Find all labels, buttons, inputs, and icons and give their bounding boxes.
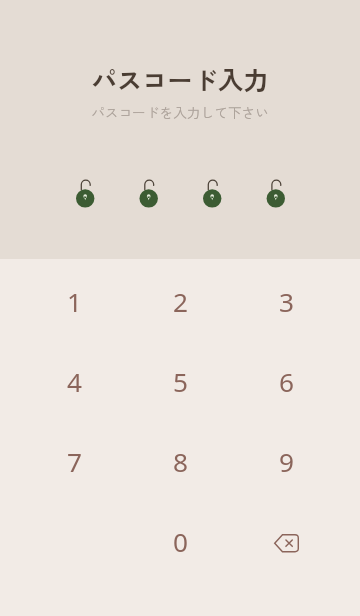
- staticText: パスコードを入力して下さい: [91, 102, 269, 122]
- button[interactable]: 4: [21, 342, 127, 422]
- button[interactable]: Delete: [233, 502, 339, 582]
- staticText: 5: [173, 364, 188, 400]
- staticText: 6: [279, 364, 294, 400]
- button[interactable]: 7: [21, 422, 127, 502]
- button[interactable]: 1: [21, 262, 127, 342]
- button[interactable]: 3: [233, 262, 339, 342]
- button[interactable]: 8: [127, 422, 233, 502]
- other: Delete: [274, 533, 299, 552]
- staticText: パスコード入力: [91, 61, 269, 98]
- button[interactable]: 5: [127, 342, 233, 422]
- staticText: 2: [173, 284, 188, 320]
- button[interactable]: 9: [233, 422, 339, 502]
- staticText: 9: [279, 444, 294, 480]
- staticText: 7: [67, 444, 82, 480]
- button[interactable]: 6: [233, 342, 339, 422]
- staticText: 4: [67, 364, 82, 400]
- staticText: 3: [279, 284, 294, 320]
- staticText: 8: [173, 444, 188, 480]
- button[interactable]: 2: [127, 262, 233, 342]
- staticText: 1: [67, 284, 82, 320]
- button[interactable]: 0: [127, 502, 233, 582]
- staticText: 0: [173, 524, 188, 560]
